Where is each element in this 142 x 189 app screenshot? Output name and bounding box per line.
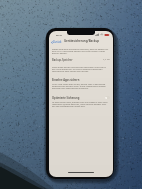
- staticText: Gerätesicherung/Backup: [64, 39, 100, 43]
- staticText: reduzierten Qualität gesichert, damit sp…: [52, 103, 109, 106]
- staticText: Optimierte Sicherung: [52, 96, 80, 100]
- staticText: 09:41: [56, 33, 63, 36]
- staticText: Zurück: [53, 40, 62, 44]
- button[interactable]: Back: [50, 39, 63, 45]
- staticText: Deine Daten werden verschlüsselt übertra…: [52, 66, 109, 69]
- staticText: 4,2 GB: [103, 58, 110, 61]
- button[interactable]: Optimierte Sicherung: [49, 95, 113, 100]
- staticText: eine WLAN-Verbindung besteht und Strom a…: [52, 50, 109, 53]
- staticText: Einzelne Apps sichern: [52, 78, 80, 82]
- staticText: Speicherplatz dazu kaufen oder löschen.: [52, 70, 109, 73]
- button[interactable]: Backup-Speicher: [49, 57, 113, 62]
- staticText: In der Liste unten legst du fest, welche…: [52, 83, 109, 86]
- staticText: besonders viel Speicherplatz im Backup.: [52, 87, 109, 90]
- staticText: Dieses Gerät wird automatisch gesichert,…: [52, 48, 109, 51]
- staticText: Backup: gestern.: [52, 52, 109, 55]
- staticText: Ist diese Option aktiv, werden Fotos und…: [52, 101, 109, 104]
- staticText: der Cloud gespeichert. Du kannst jederze…: [52, 68, 109, 71]
- staticText: Backup-Speicher: [52, 58, 73, 62]
- staticText: auf dem Gerätespeicher belegt wird.: [52, 105, 109, 108]
- staticText: aufgenommen werden sollen. Große Mediath…: [52, 85, 109, 88]
